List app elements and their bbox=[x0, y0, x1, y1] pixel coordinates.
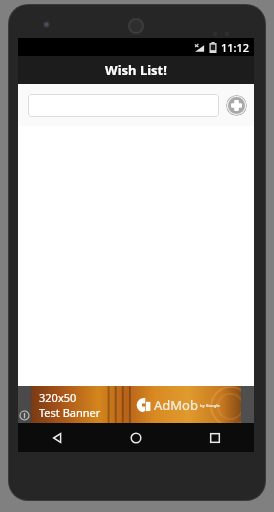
button[interactable] bbox=[28, 94, 219, 117]
staticText: Wish List! bbox=[105, 61, 167, 79]
staticText: Test Banner bbox=[39, 405, 101, 420]
button[interactable]: AdMob test banner advertisement bbox=[18, 386, 254, 423]
button[interactable]: Recent apps bbox=[175, 423, 254, 452]
staticText: 11:12 bbox=[221, 40, 250, 55]
button[interactable]: Back bbox=[18, 423, 96, 452]
staticText: by Google bbox=[200, 403, 220, 408]
staticText: 320x50 bbox=[39, 390, 77, 405]
button[interactable]: Add item bbox=[226, 95, 247, 116]
button[interactable]: Home bbox=[96, 423, 175, 452]
staticText: AdMob bbox=[154, 396, 198, 414]
